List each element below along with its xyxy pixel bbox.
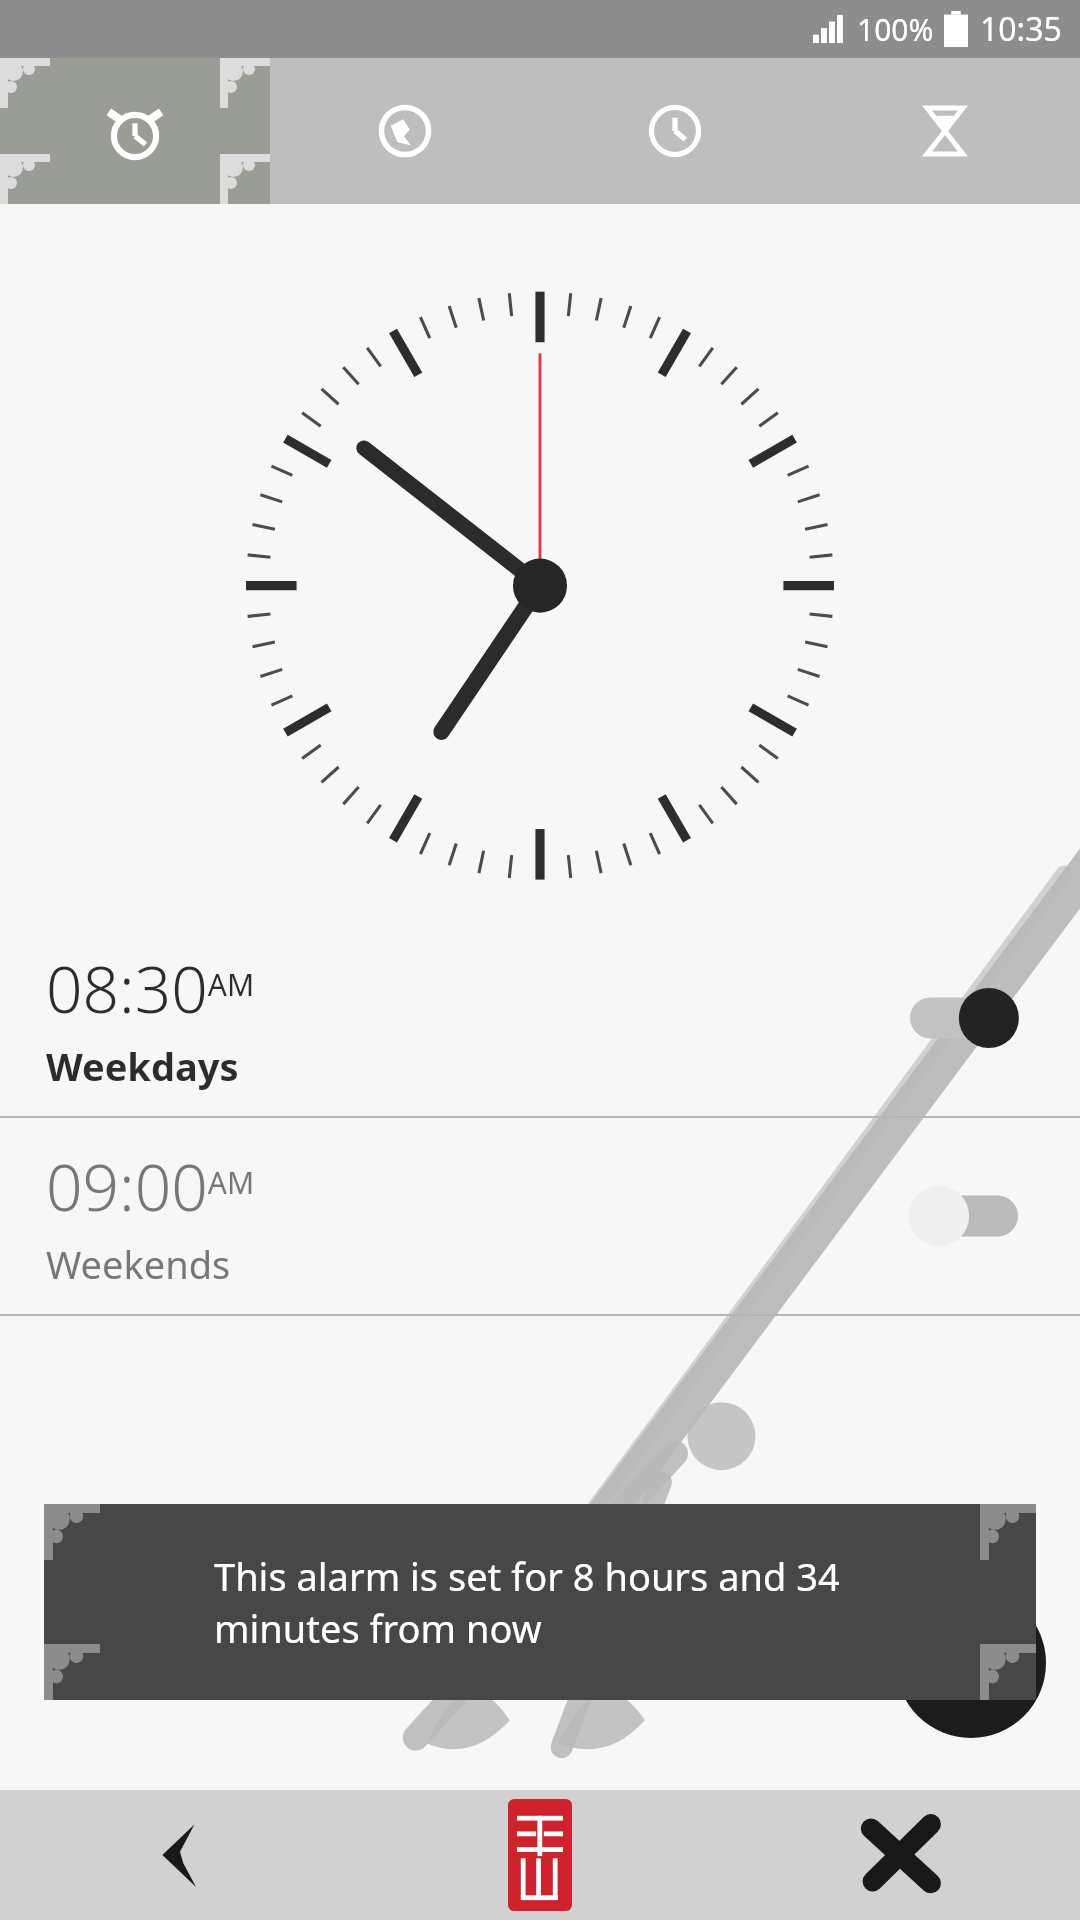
staticText: This alarm is set for 8 hours and 34 min… — [214, 1550, 840, 1654]
button[interactable]: Home — [360, 1790, 720, 1920]
button[interactable]: Stopwatch — [540, 58, 810, 204]
staticText: Weekends — [46, 1238, 231, 1290]
button[interactable]: World clock — [270, 58, 540, 204]
staticText: 100% — [857, 9, 934, 50]
button[interactable]: 09:00AM — [0, 1118, 1080, 1314]
staticText: 10:35 — [980, 7, 1062, 51]
button[interactable]: 08:30AM — [0, 920, 1080, 1116]
button[interactable]: Alarm — [0, 58, 270, 204]
button[interactable]: Add alarm — [896, 1588, 1046, 1738]
button[interactable]: Back — [0, 1790, 360, 1920]
staticText: 09:00AM — [46, 1143, 255, 1230]
button[interactable]: Recents — [720, 1790, 1080, 1920]
button[interactable]: Alarm disabled — [910, 1183, 1018, 1249]
staticText: Weekdays — [46, 1040, 239, 1092]
button[interactable]: Timer — [810, 58, 1080, 204]
button[interactable]: Alarm enabled — [910, 985, 1018, 1051]
staticText: 08:30AM — [46, 945, 255, 1032]
